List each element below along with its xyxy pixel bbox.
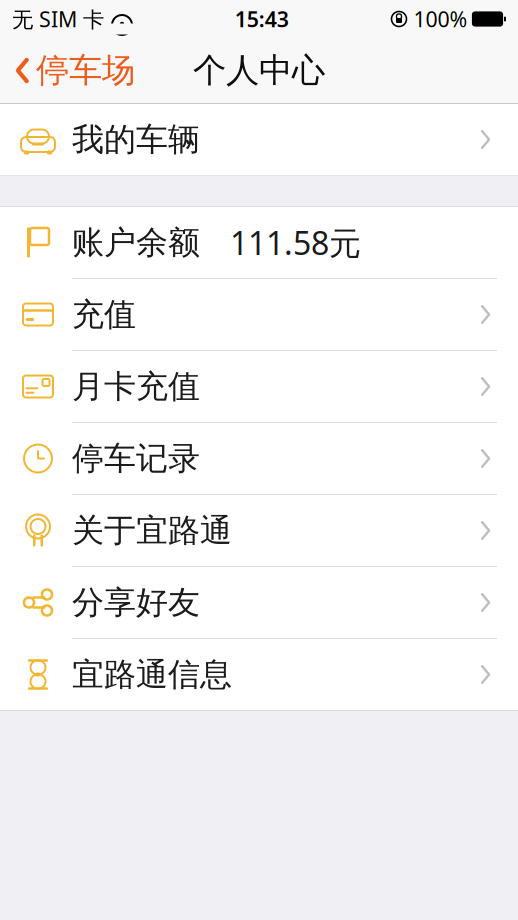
staticText: 宜路通信息 — [72, 655, 232, 694]
staticText: 个人中心 — [193, 50, 325, 91]
staticText: 无 SIM 卡 — [12, 5, 104, 33]
staticText: 停车记录 — [72, 439, 200, 478]
button[interactable]: 停车场 — [0, 44, 135, 97]
button[interactable]: 账户余额 — [0, 207, 518, 278]
staticText: 账户余额 — [72, 223, 200, 262]
staticText: 分享好友 — [72, 583, 200, 622]
staticText: 充值 — [72, 295, 136, 334]
button[interactable]: 分享好友 — [0, 567, 518, 638]
staticText: 停车场 — [36, 50, 135, 91]
staticText: 关于宜路通 — [72, 511, 232, 550]
button[interactable]: 停车记录 — [0, 423, 518, 494]
button[interactable]: 充值 — [0, 279, 518, 350]
button[interactable]: 我的车辆 — [0, 104, 518, 175]
button[interactable]: 宜路通信息 — [0, 639, 518, 710]
staticText: 111.58元 — [230, 221, 361, 264]
staticText: 100% — [413, 5, 467, 33]
staticText: 月卡充值 — [72, 367, 200, 406]
button[interactable]: 月卡充值 — [0, 351, 518, 422]
button[interactable]: 关于宜路通 — [0, 495, 518, 566]
staticText: 我的车辆 — [72, 120, 200, 159]
staticText: 15:43 — [235, 5, 289, 33]
